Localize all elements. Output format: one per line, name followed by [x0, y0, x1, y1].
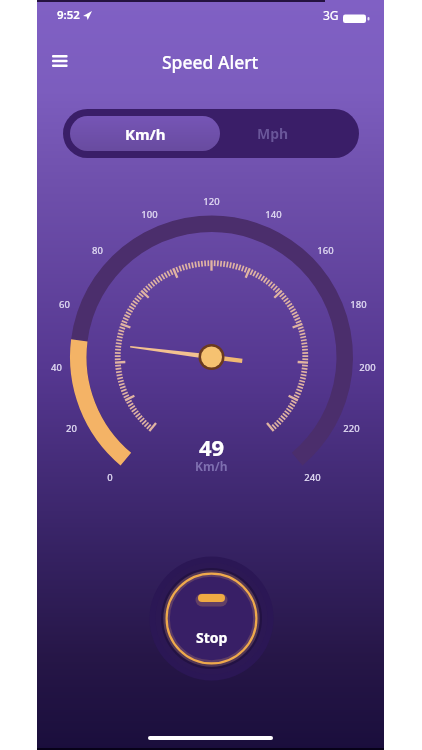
staticText: Stop	[196, 628, 228, 647]
staticText: Km/h	[195, 458, 228, 474]
staticText: 160	[317, 244, 334, 257]
button[interactable]: Stop	[148, 555, 275, 682]
staticText: 120	[203, 195, 220, 208]
staticText: 40	[51, 361, 62, 374]
staticText: 240	[304, 471, 321, 484]
staticText: 200	[359, 361, 376, 374]
staticText: Mph	[257, 124, 289, 143]
staticText: 9:52	[57, 7, 80, 23]
staticText: 80	[92, 244, 103, 257]
staticText: 220	[343, 422, 360, 435]
staticText: 60	[59, 298, 70, 311]
staticText: Speed Alert	[162, 50, 259, 74]
staticText: 100	[141, 208, 158, 221]
staticText: 140	[265, 208, 282, 221]
staticText: 20	[66, 422, 77, 435]
staticText: 180	[350, 298, 367, 311]
staticText: 49	[199, 432, 225, 458]
button[interactable]: Mph	[220, 116, 326, 151]
staticText: 0	[107, 471, 113, 484]
staticText: Km/h	[125, 124, 166, 144]
staticText: 3G	[323, 7, 339, 23]
button[interactable]: Menu	[38, 45, 82, 77]
button[interactable]: Km/h	[70, 116, 220, 151]
